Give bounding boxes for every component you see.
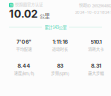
staticText: 10.02 (9, 7, 38, 20)
staticText: 累计143公里 (44, 24, 66, 30)
staticText: 2024-10-02 18:24:36 (75, 10, 111, 15)
staticText: 510.1 (90, 38, 101, 45)
staticText: 步频(spm) (51, 71, 69, 76)
staticText: 平均配速 (16, 47, 32, 52)
staticText: 公里 (39, 12, 49, 20)
staticText: 悦跑ID 2652964802 (79, 3, 111, 8)
staticText: 83 (57, 62, 63, 69)
staticText: 8.44 (17, 62, 30, 69)
staticText: 7'06" (16, 38, 31, 45)
staticText: 速度(km/h) (14, 71, 34, 76)
staticText: 1:11:16 (52, 38, 67, 45)
staticText: 消耗大卡 (88, 47, 104, 52)
staticText: 悦跑圈官方认证 (15, 2, 43, 8)
staticText: 悦 (10, 3, 13, 8)
staticText: 8.31 (91, 62, 101, 69)
staticText: 运动时长 (52, 47, 68, 52)
staticText: 最大步幅 (88, 71, 104, 76)
